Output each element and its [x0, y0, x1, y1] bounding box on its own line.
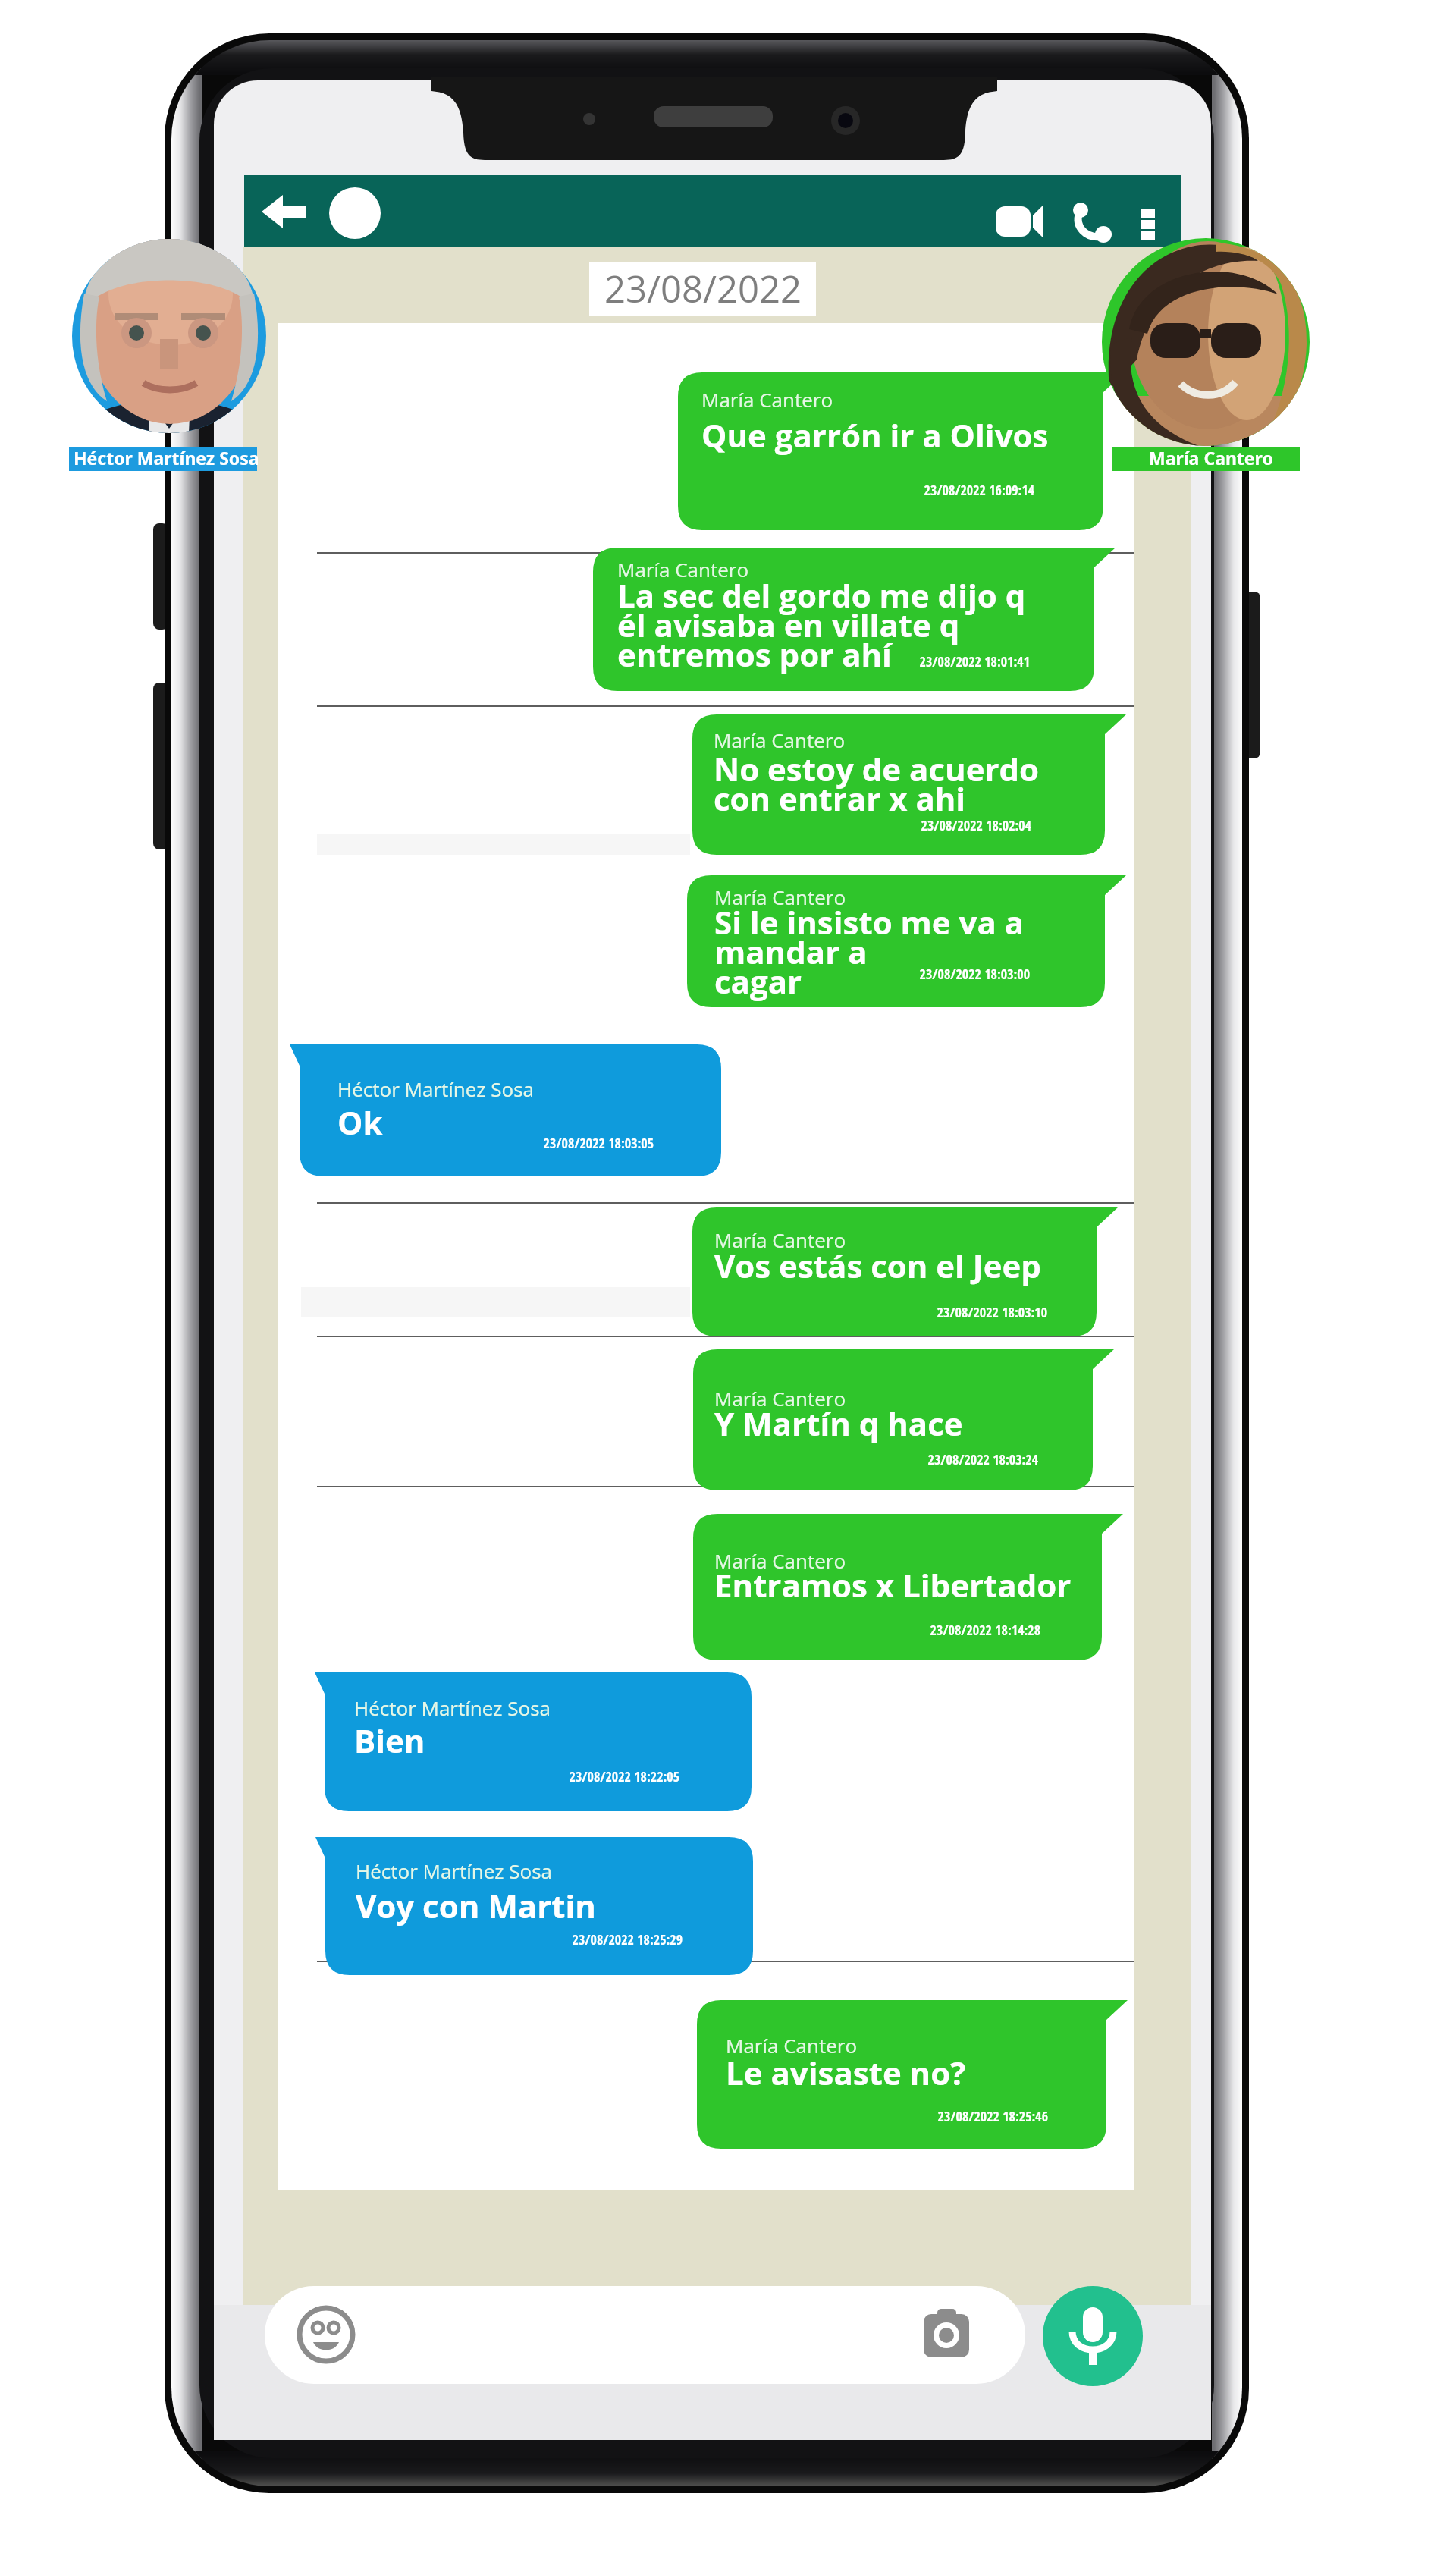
staticText: María Cantero: [701, 386, 833, 413]
button[interactable]: María Cantero: [697, 2000, 1106, 2149]
button[interactable]: María Cantero: [678, 372, 1103, 530]
staticText: Héctor Martínez Sosa: [356, 1857, 553, 1884]
button[interactable]: María Cantero: [693, 1514, 1102, 1660]
staticText: 23/08/2022 18:14:28: [813, 1621, 1040, 1640]
staticText: Héctor Martínez Sosa: [74, 446, 259, 469]
staticText: Héctor Martínez Sosa: [337, 1076, 535, 1102]
button[interactable]: Contact avatar: [329, 187, 381, 239]
button[interactable]: Héctor Martínez Sosa: [325, 1837, 753, 1975]
staticText: 23/08/2022 18:03:24: [811, 1450, 1038, 1469]
staticText: María Cantero: [714, 1226, 846, 1253]
button[interactable]: Héctor Martínez Sosa: [325, 1672, 752, 1811]
staticText: 23/08/2022 18:25:46: [821, 2107, 1048, 2126]
staticText: Entramos x Libertador: [714, 1563, 1072, 1606]
button[interactable]: Back: [247, 180, 317, 242]
staticText: 23/08/2022: [604, 263, 802, 314]
button[interactable]: Héctor Martínez Sosa: [300, 1044, 721, 1176]
staticText: María Cantero: [714, 1385, 846, 1412]
staticText: Vos estás con el Jeep: [714, 1244, 1041, 1287]
staticText: 23/08/2022 18:03:10: [820, 1303, 1047, 1322]
staticText: María Cantero: [1149, 446, 1273, 469]
staticText: María Cantero: [714, 727, 846, 753]
staticText: Voy con Martin: [356, 1884, 596, 1927]
staticText: Que garrón ir a Olivos: [701, 413, 1049, 457]
staticText: La sec del gordo me dijo q él avisaba en…: [617, 573, 1026, 676]
button[interactable]: Call: [1072, 203, 1116, 242]
button[interactable]: Voice message: [1043, 2286, 1143, 2386]
button[interactable]: María Cantero: [593, 548, 1094, 691]
button[interactable]: More options: [1133, 203, 1163, 243]
staticText: 23/08/2022 18:02:04: [804, 816, 1031, 835]
staticText: María Cantero: [714, 884, 846, 910]
button[interactable]: María Cantero: [693, 1349, 1093, 1490]
staticText: 23/08/2022 16:09:14: [807, 481, 1034, 500]
button[interactable]: María Cantero: [687, 875, 1105, 1007]
staticText: Le avisaste no?: [726, 2051, 966, 2094]
staticText: 23/08/2022 18:03:00: [802, 965, 1030, 984]
staticText: No estoy de acuerdo con entrar x ahi: [714, 747, 1040, 820]
button[interactable]: Video call: [993, 203, 1047, 240]
button[interactable]: María Cantero: [1102, 238, 1310, 446]
staticText: Bien: [354, 1719, 425, 1762]
staticText: María Cantero: [714, 1547, 846, 1574]
button[interactable]: Héctor Martínez Sosa: [69, 447, 257, 471]
staticText: María Cantero: [617, 556, 749, 583]
staticText: Héctor Martínez Sosa: [354, 1694, 551, 1721]
button[interactable]: María Cantero: [692, 714, 1105, 855]
staticText: Ok: [337, 1101, 383, 1144]
staticText: Y Martín q hace: [714, 1402, 963, 1445]
staticText: 23/08/2022 18:01:41: [802, 652, 1030, 671]
button[interactable]: María Cantero: [1112, 447, 1300, 471]
button[interactable]: Message input: [265, 2286, 1025, 2384]
staticText: 23/08/2022 18:25:29: [455, 1930, 682, 1949]
staticText: 23/08/2022 18:03:05: [426, 1134, 654, 1153]
staticText: María Cantero: [726, 2032, 858, 2058]
staticText: Si le insisto me va a mandar a cagar: [714, 900, 1025, 1003]
button[interactable]: Héctor Martínez Sosa: [72, 239, 266, 433]
button[interactable]: María Cantero: [692, 1207, 1097, 1336]
staticText: 23/08/2022 18:22:05: [452, 1767, 679, 1786]
